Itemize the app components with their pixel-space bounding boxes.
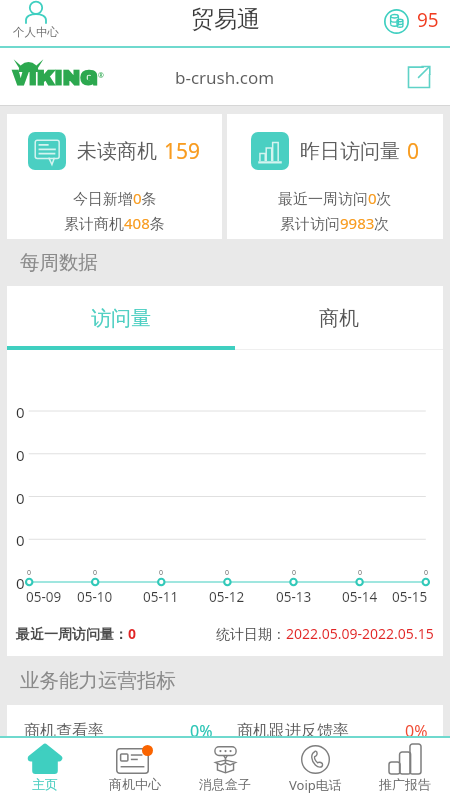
staticText: 0 (16, 488, 25, 508)
staticText: 贸易通 (191, 5, 260, 34)
staticText: 0 (159, 568, 164, 578)
staticText: 推广报告 (379, 776, 431, 792)
staticText: 0 (16, 402, 25, 422)
staticText: 商机查看率 (24, 721, 104, 741)
button[interactable]: Voip电话 (270, 738, 360, 800)
staticText: 0 (16, 530, 25, 550)
staticText: 05-13 (276, 588, 312, 606)
button[interactable]: 商机查看率 (24, 720, 213, 742)
staticText: 个人中心 (13, 25, 59, 39)
staticText: 0 (93, 568, 98, 578)
staticText: 最近一周访问量：0 (16, 624, 137, 643)
staticText: b-crush.com (175, 66, 275, 89)
staticText: 0 (27, 568, 32, 578)
button[interactable]: 消息盒子 (180, 738, 270, 800)
button[interactable]: 商机中心 (90, 738, 180, 800)
staticText: 每周数据 (20, 250, 98, 275)
other: Points (384, 9, 409, 34)
staticText: 0 (424, 568, 429, 578)
button[interactable]: 商机 (235, 286, 443, 350)
staticText: 05-10 (77, 588, 113, 606)
staticText: 统计日期：2022.05.09-2022.05.15 (216, 624, 434, 643)
button[interactable]: 商机跟进反馈率 (237, 720, 428, 742)
staticText: 昨日访问量 (300, 139, 400, 164)
staticText: 159 (164, 137, 201, 166)
staticText: 累计商机408条 (64, 213, 165, 233)
staticText: Voip电话 (289, 776, 342, 794)
staticText: 未读商机 (77, 139, 157, 164)
staticText: 累计访问9983次 (280, 213, 390, 233)
button[interactable]: 推广报告 (360, 738, 450, 800)
staticText: 05-12 (209, 588, 245, 606)
staticText: 0 (358, 568, 363, 578)
staticText: 0% (405, 720, 428, 742)
button[interactable]: 访问量 (7, 286, 235, 350)
button[interactable]: Open website (404, 62, 434, 92)
staticText: 05-14 (342, 588, 378, 606)
button[interactable]: 未读商机 (7, 114, 222, 239)
staticText: 0 (16, 573, 25, 593)
staticText: 0 (225, 568, 230, 578)
staticText: 商机中心 (109, 776, 161, 792)
staticText: 0 (292, 568, 297, 578)
staticText: 主页 (32, 776, 58, 792)
staticText: 95 (417, 7, 439, 33)
staticText: 商机 (319, 306, 359, 331)
staticText: 访问量 (91, 306, 151, 331)
staticText: 最近一周访问0次 (278, 188, 392, 208)
staticText: 05-11 (143, 588, 179, 606)
staticText: ® (98, 71, 104, 81)
button[interactable]: 个人中心 (13, 1, 59, 39)
button[interactable]: 主页 (0, 738, 90, 800)
staticText: VIKING (12, 67, 98, 90)
staticText: 05-09 (26, 588, 62, 606)
staticText: 消息盒子 (199, 776, 251, 792)
button[interactable]: Points (384, 8, 439, 34)
staticText: 今日新增0条 (73, 188, 157, 208)
staticText: 0 (407, 137, 420, 166)
staticText: 商机跟进反馈率 (237, 721, 349, 741)
staticText: 05-15 (392, 588, 428, 606)
button[interactable]: 昨日访问量 (227, 114, 443, 239)
staticText: 0% (190, 720, 213, 742)
staticText: 业务能力运营指标 (20, 668, 176, 693)
staticText: 0 (16, 445, 25, 465)
